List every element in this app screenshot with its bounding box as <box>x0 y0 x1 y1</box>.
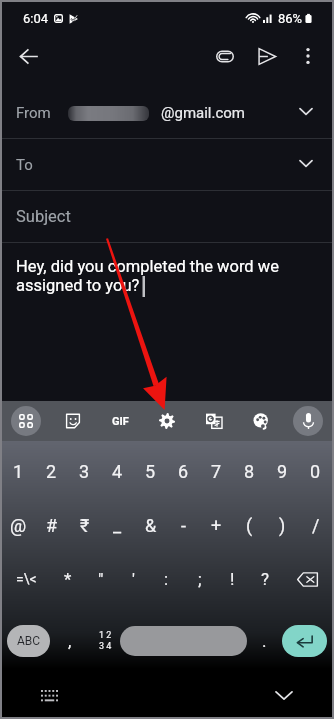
button[interactable]: 3 <box>68 444 101 498</box>
staticText: , <box>68 631 72 651</box>
button[interactable]: / <box>299 498 332 552</box>
button[interactable]: Back <box>8 36 48 76</box>
staticText: 2 <box>46 461 57 482</box>
staticText: From <box>16 104 51 122</box>
button[interactable]: Attach file <box>204 35 246 77</box>
button[interactable]: 5 <box>134 444 167 498</box>
button[interactable]: Send <box>246 35 288 77</box>
button[interactable]: @ <box>2 498 35 552</box>
staticText: + <box>211 515 222 536</box>
staticText: 8 <box>244 461 255 482</box>
button[interactable]: =\< <box>2 552 51 606</box>
button[interactable]: ) <box>266 498 299 552</box>
staticText: 3 4 <box>99 641 112 652</box>
button[interactable]: From <box>2 88 332 138</box>
button[interactable]: 4 <box>101 444 134 498</box>
button[interactable]: : <box>150 552 183 606</box>
button[interactable]: ; <box>183 552 216 606</box>
staticText: 6:04 <box>23 11 49 26</box>
button[interactable]: Hide keyboard <box>271 682 297 708</box>
button[interactable]: To <box>2 139 332 190</box>
button[interactable]: - <box>167 498 200 552</box>
button[interactable]: ABC <box>7 625 50 657</box>
staticText: " <box>98 569 104 589</box>
button[interactable]: 6 <box>167 444 200 498</box>
staticText: ABC <box>17 634 41 648</box>
button[interactable]: 1 <box>2 444 35 498</box>
button[interactable]: Stickers <box>58 406 88 436</box>
staticText: ( <box>246 515 253 536</box>
button[interactable]: Subject <box>2 191 332 242</box>
button[interactable]: Switch keyboard <box>36 683 62 709</box>
staticText: _ <box>113 515 122 536</box>
button[interactable]: Voice input <box>293 406 323 436</box>
staticText: Subject <box>16 207 71 226</box>
button[interactable]: , <box>50 612 90 669</box>
staticText: * <box>64 569 72 589</box>
staticText: 1 2 <box>99 630 112 641</box>
staticText: & <box>145 515 157 536</box>
staticText: : <box>164 569 169 589</box>
button[interactable]: 9 <box>266 444 299 498</box>
button[interactable]: 1 2 <box>90 612 120 669</box>
button[interactable]: Themes <box>246 406 276 436</box>
button[interactable]: Translate <box>199 406 229 436</box>
button[interactable]: ! <box>216 552 249 606</box>
button[interactable]: # <box>35 498 68 552</box>
staticText: 4 <box>112 461 123 482</box>
staticText: =\< <box>16 571 37 587</box>
staticText: Hey, did you completed the word we assig… <box>16 257 322 295</box>
button[interactable]: . <box>247 612 282 669</box>
staticText: # <box>46 515 58 536</box>
staticText: 7 <box>211 461 222 482</box>
button[interactable]: Space <box>120 626 247 656</box>
staticText: 3 <box>79 461 90 482</box>
button[interactable]: Hey, did you completed the word we assig… <box>16 257 322 295</box>
button[interactable]: Enter <box>282 625 327 657</box>
button[interactable]: 2 <box>35 444 68 498</box>
staticText: . <box>262 631 267 651</box>
staticText: ! <box>230 569 235 589</box>
button[interactable]: ' <box>117 552 150 606</box>
staticText: - <box>181 515 186 536</box>
staticText: 5 <box>145 461 156 482</box>
staticText: ? <box>261 569 270 589</box>
button[interactable]: Backspace <box>282 552 332 606</box>
button[interactable]: " <box>84 552 117 606</box>
button[interactable]: _ <box>101 498 134 552</box>
staticText: To <box>16 156 33 174</box>
staticText: ' <box>132 569 135 589</box>
button[interactable]: Toolbox <box>11 406 41 436</box>
button[interactable]: More options <box>288 36 328 76</box>
button[interactable]: ₹ <box>68 498 101 552</box>
button[interactable]: GIF <box>105 406 135 436</box>
button[interactable]: ? <box>249 552 282 606</box>
staticText: 6 <box>178 461 189 482</box>
staticText: ; <box>198 569 202 589</box>
staticText: ₹ <box>80 515 90 536</box>
staticText: @gmail.com <box>161 104 246 122</box>
staticText: 9 <box>277 461 288 482</box>
staticText: ) <box>279 515 286 536</box>
button[interactable]: ( <box>233 498 266 552</box>
button[interactable]: * <box>51 552 84 606</box>
button[interactable]: + <box>200 498 233 552</box>
staticText: / <box>312 515 320 536</box>
staticText: @ <box>10 515 27 536</box>
staticText: 0 <box>310 461 321 482</box>
staticText: 1 <box>13 461 24 482</box>
staticText: GIF <box>112 415 129 428</box>
button[interactable]: & <box>134 498 167 552</box>
staticText: 86% <box>278 11 303 26</box>
button[interactable]: 0 <box>299 444 332 498</box>
button[interactable]: 7 <box>200 444 233 498</box>
button[interactable]: 8 <box>233 444 266 498</box>
button[interactable]: Settings <box>152 406 182 436</box>
